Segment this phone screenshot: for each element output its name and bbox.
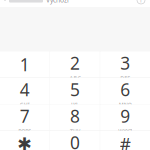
- staticText: DEF: [120, 74, 130, 82]
- button[interactable]: 6 MNO: [100, 78, 150, 104]
- staticText: i: [140, 0, 142, 4]
- staticText: 4: [20, 78, 30, 101]
- staticText: ABC: [69, 74, 80, 82]
- staticText: 3: [120, 51, 130, 74]
- staticText: GHI: [20, 101, 30, 108]
- button[interactable]: Information: [137, 0, 150, 7]
- staticText: 1: [20, 53, 30, 76]
- staticText: 6: [120, 78, 130, 101]
- staticText: TUV: [70, 127, 80, 135]
- staticText: PQRS: [18, 127, 31, 135]
- staticText: #: [120, 132, 131, 150]
- button[interactable]: 7 PQRS: [0, 104, 50, 130]
- button[interactable]: 8 TUV: [50, 104, 100, 130]
- button[interactable]: 0 +: [50, 131, 100, 150]
- staticText: 8: [70, 104, 80, 127]
- button[interactable]: 3 DEF: [100, 51, 150, 77]
- staticText: MNO: [119, 101, 132, 108]
- staticText: 0: [70, 131, 80, 150]
- button[interactable]: #: [100, 131, 150, 150]
- button[interactable]: 1: [0, 51, 50, 77]
- button[interactable]: 5 JKL: [50, 78, 100, 104]
- staticText: 5: [70, 78, 80, 101]
- button[interactable]: Výchozí: [0, 0, 69, 7]
- button[interactable]: 4 GHI: [0, 78, 50, 104]
- staticText: JKL: [71, 101, 79, 108]
- staticText: 2: [70, 51, 80, 74]
- staticText: 7: [20, 104, 30, 127]
- button[interactable]: 9 WXYZ: [100, 104, 150, 130]
- button[interactable]: ✱: [0, 131, 50, 150]
- staticText: WXYZ: [118, 127, 132, 135]
- staticText: Výchozí: [46, 0, 69, 4]
- staticText: ✱: [17, 134, 32, 150]
- button[interactable]: 2 ABC: [50, 51, 100, 77]
- staticText: 9: [120, 104, 130, 127]
